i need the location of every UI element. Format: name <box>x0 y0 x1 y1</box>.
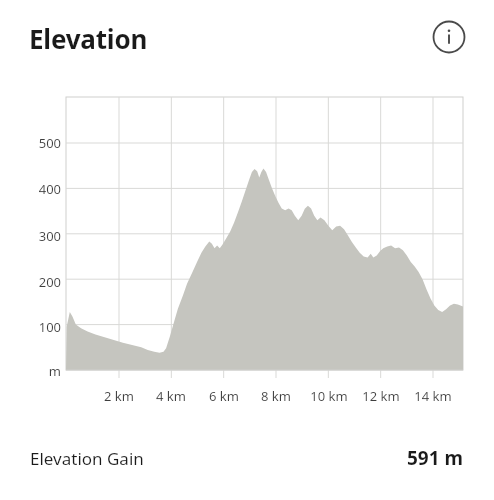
staticText: 10 km <box>310 387 348 405</box>
staticText: 591 m <box>407 445 464 471</box>
button[interactable]: Elevation Gain <box>0 445 494 471</box>
staticText: 4 km <box>156 387 186 405</box>
button[interactable]: Information <box>431 19 467 55</box>
staticText: 500 <box>38 134 61 152</box>
staticText: 8 km <box>261 387 291 405</box>
staticText: 6 km <box>209 387 239 405</box>
staticText: 400 <box>38 180 61 198</box>
staticText: 14 km <box>414 387 452 405</box>
staticText: Elevation Gain <box>30 447 144 470</box>
staticText: Elevation <box>29 21 148 56</box>
staticText: 100 <box>38 318 61 336</box>
staticText: 12 km <box>362 387 400 405</box>
staticText: 2 km <box>104 387 134 405</box>
staticText: 300 <box>38 227 61 245</box>
staticText: 200 <box>38 273 61 291</box>
staticText: m <box>48 362 61 380</box>
